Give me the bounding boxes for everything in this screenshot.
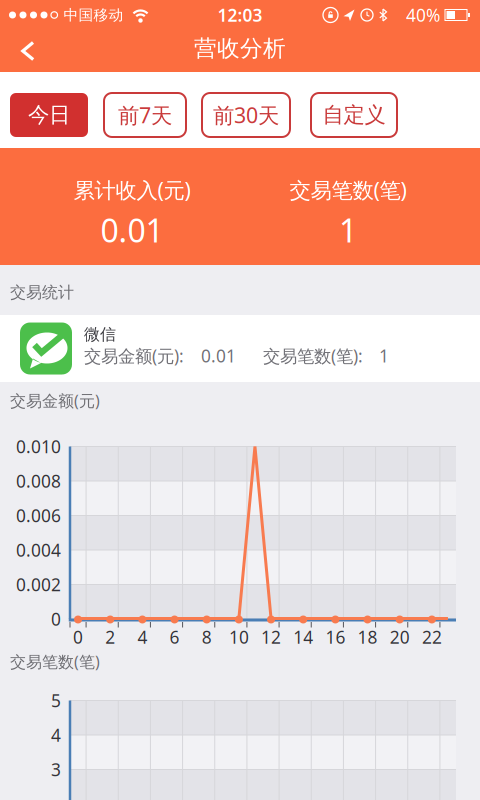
staticText: 6 (169, 625, 179, 648)
staticText: 交易金额(元): (84, 344, 184, 367)
staticText: 22 (422, 625, 442, 648)
staticText: 中国移动 (63, 6, 123, 24)
staticText: 今日 (28, 102, 70, 128)
staticText: 交易统计 (10, 283, 74, 302)
button[interactable]: Back (0, 30, 35, 71)
button[interactable]: 今日 (10, 93, 88, 137)
staticText: 3 (51, 758, 61, 781)
staticText: 前7天 (118, 101, 172, 129)
staticText: 0 (51, 607, 61, 630)
staticText: 交易金额(元) (10, 390, 100, 411)
staticText: 10 (229, 625, 249, 648)
button[interactable]: 前7天 (104, 93, 186, 137)
staticText: 20 (390, 625, 410, 648)
staticText: 1 (379, 344, 389, 367)
staticText: 0.01 (201, 344, 236, 367)
button[interactable]: 前30天 (202, 93, 290, 137)
button[interactable]: 自定义 (311, 93, 397, 137)
staticText: 交易笔数(笔) (10, 651, 100, 672)
button[interactable]: 微信 (0, 315, 480, 382)
staticText: 0.002 (16, 573, 61, 596)
staticText: 营收分析 (194, 35, 286, 62)
staticText: 累计收入(元) (73, 176, 190, 204)
staticText: 微信 (84, 325, 116, 344)
staticText: 14 (293, 625, 313, 648)
staticText: 12:03 (217, 3, 262, 26)
staticText: 0.008 (16, 469, 61, 492)
staticText: 12 (261, 625, 281, 648)
staticText: 交易笔数(笔): (263, 344, 363, 367)
staticText: 4 (137, 625, 147, 648)
staticText: 0.004 (16, 538, 61, 561)
staticText: 4 (51, 723, 61, 746)
staticText: 8 (202, 625, 212, 648)
staticText: 0 (73, 625, 83, 648)
staticText: 40% (406, 3, 440, 26)
staticText: 1 (339, 209, 357, 251)
staticText: 2 (105, 625, 115, 648)
staticText: 前30天 (213, 101, 279, 129)
staticText: 自定义 (322, 102, 385, 128)
staticText: 交易笔数(笔) (289, 176, 406, 204)
staticText: 0.006 (16, 504, 61, 527)
staticText: 0.010 (16, 435, 61, 458)
staticText: 18 (357, 625, 377, 648)
staticText: 0.01 (100, 209, 163, 251)
staticText: 5 (51, 689, 61, 712)
staticText: 16 (325, 625, 345, 648)
